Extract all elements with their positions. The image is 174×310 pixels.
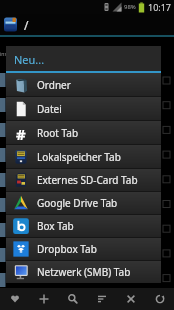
button[interactable]	[116, 288, 145, 310]
button[interactable]: Google Drive Tab	[6, 192, 161, 214]
staticText: Externes SD-Card Tab	[37, 173, 138, 187]
staticText: Netzwerk (SMB) Tab	[37, 265, 131, 279]
staticText: Ordner	[37, 78, 71, 92]
staticText: Box Tab	[37, 219, 74, 233]
staticText: Dropbox Tab	[37, 242, 97, 256]
button[interactable]	[145, 288, 174, 310]
staticText: 10:17	[148, 1, 172, 13]
staticText: Lokalspeicher Tab	[37, 150, 121, 164]
staticText: Neu...	[14, 52, 45, 67]
button[interactable]: #	[6, 121, 161, 144]
button[interactable]: Netzwerk (SMB) Tab	[6, 261, 161, 283]
staticText: /	[24, 17, 29, 33]
button[interactable]	[29, 288, 58, 310]
button[interactable]	[58, 288, 87, 310]
button[interactable]	[0, 288, 29, 310]
staticText: Datei	[37, 102, 62, 116]
button[interactable]: Ordner	[6, 73, 161, 96]
staticText: #	[16, 124, 26, 142]
staticText: Root Tab	[37, 126, 79, 140]
button[interactable]: Externes SD-Card Tab	[6, 169, 161, 191]
button[interactable]: /	[0, 14, 174, 35]
button[interactable]: Dropbox Tab	[6, 238, 161, 260]
staticText: ins	[0, 51, 7, 58]
button[interactable]: Lokalspeicher Tab	[6, 145, 161, 168]
staticText: Google Drive Tab	[37, 196, 118, 210]
button[interactable]: Box Tab	[6, 215, 161, 237]
button[interactable]	[87, 288, 116, 310]
button[interactable]: Datei	[6, 97, 161, 120]
staticText: 98%	[124, 3, 136, 11]
